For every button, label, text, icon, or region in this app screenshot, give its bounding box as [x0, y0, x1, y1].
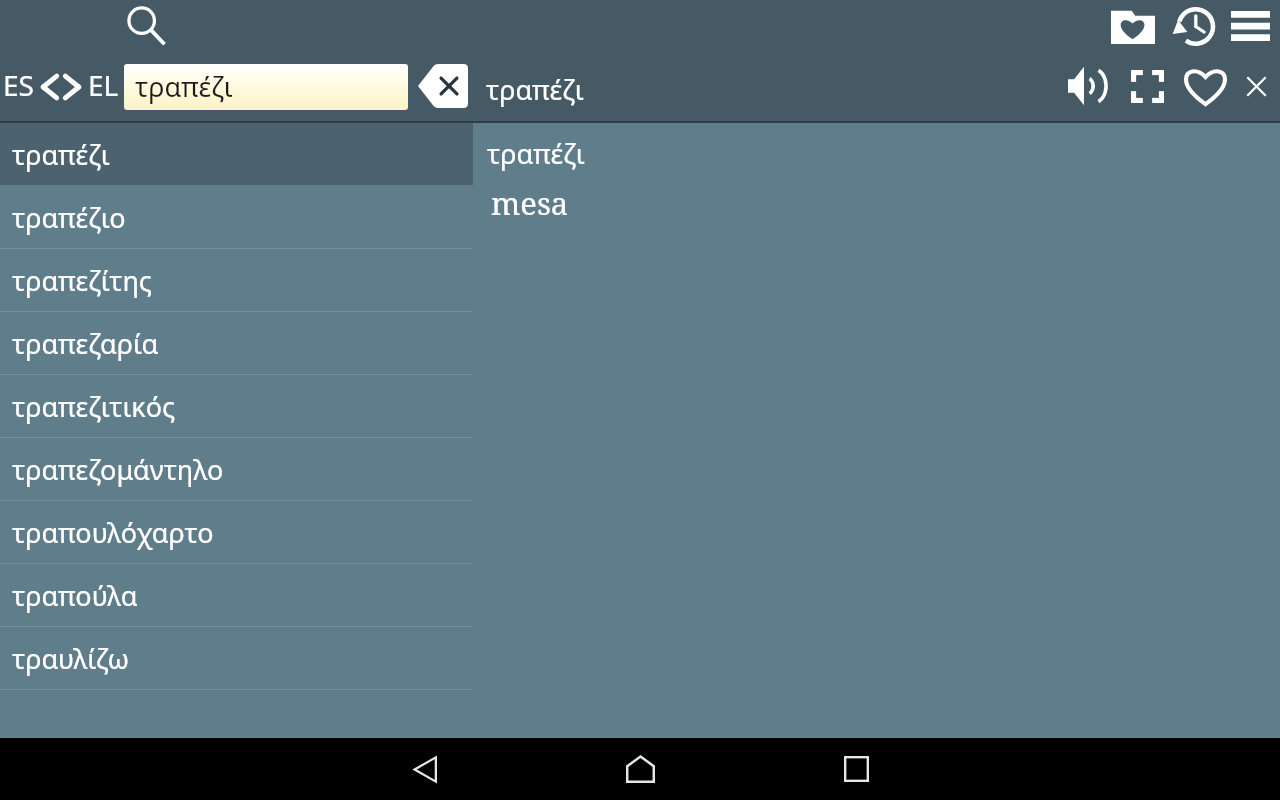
button[interactable]: τραπεζομάντηλο — [0, 438, 473, 501]
staticText: τραπεζαρία — [12, 325, 159, 362]
staticText: τραπεζίτης — [12, 262, 152, 299]
button[interactable]: τραπεζαρία — [0, 312, 473, 375]
button[interactable]: Home — [611, 740, 669, 798]
staticText: τραπεζομάντηλο — [12, 451, 224, 488]
button[interactable]: Clear — [418, 64, 468, 108]
button[interactable]: τραπέζι — [0, 123, 473, 186]
staticText: τραπεζιτικός — [12, 388, 176, 425]
button[interactable]: ES — [3, 57, 119, 113]
button[interactable]: τραπούλα — [0, 564, 473, 627]
button[interactable]: Search — [124, 0, 170, 52]
button[interactable]: Recent apps — [827, 740, 885, 798]
button[interactable]: τραπουλόχαρτο — [0, 501, 473, 564]
button[interactable]: τραπέζιο — [0, 186, 473, 249]
staticText: τραυλίζω — [12, 640, 130, 677]
button[interactable]: τραπεζιτικός — [0, 375, 473, 438]
button[interactable]: Close — [1232, 59, 1280, 113]
staticText: mesa — [491, 182, 569, 224]
staticText: EL — [88, 66, 119, 104]
staticText: τραπούλα — [12, 577, 138, 614]
staticText: τραπέζι — [487, 135, 585, 172]
button[interactable]: τραυλίζω — [0, 627, 473, 690]
button[interactable]: Menu — [1220, 0, 1280, 50]
button[interactable]: History — [1162, 0, 1220, 50]
button[interactable]: τραπεζίτης — [0, 249, 473, 312]
button[interactable]: τραπέζι — [124, 64, 408, 110]
button[interactable]: Add to favourites — [1175, 58, 1235, 114]
staticText: τραπέζι — [486, 71, 584, 108]
staticText: τραπέζιο — [12, 199, 126, 236]
button[interactable]: Pronounce — [1053, 58, 1107, 114]
staticText: τραπέζι — [12, 136, 110, 173]
staticText: τραπουλόχαρτο — [12, 514, 214, 551]
staticText: ES — [3, 66, 34, 104]
button[interactable]: Fullscreen — [1115, 59, 1179, 113]
button[interactable]: Favourites folder — [1104, 0, 1162, 50]
staticText: τραπέζι — [135, 68, 233, 105]
button[interactable]: Back — [396, 740, 454, 798]
